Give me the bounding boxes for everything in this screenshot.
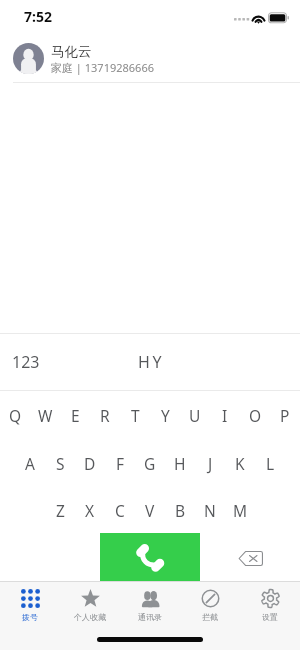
button[interactable]: C bbox=[105, 487, 135, 533]
button[interactable]: K bbox=[225, 439, 255, 487]
button[interactable]: U bbox=[180, 391, 210, 439]
button[interactable]: H bbox=[165, 439, 195, 487]
button[interactable]: 通讯录 bbox=[120, 581, 180, 626]
button[interactable]: S bbox=[45, 439, 75, 487]
button[interactable]: J bbox=[195, 439, 225, 487]
staticText: Z bbox=[56, 500, 65, 521]
button[interactable]: 设置 bbox=[240, 581, 300, 626]
staticText: E bbox=[71, 405, 80, 426]
button[interactable]: HY bbox=[123, 341, 178, 383]
staticText: 家庭 | 13719286666 bbox=[51, 60, 154, 75]
button[interactable]: M bbox=[225, 487, 255, 533]
button[interactable]: W bbox=[30, 391, 60, 439]
button[interactable]: Y bbox=[150, 391, 180, 439]
staticText: 7:52 bbox=[24, 7, 52, 26]
staticText: G bbox=[144, 453, 156, 474]
button[interactable]: D bbox=[75, 439, 105, 487]
staticText: V bbox=[145, 500, 155, 521]
staticText: U bbox=[189, 405, 201, 426]
button[interactable]: G bbox=[135, 439, 165, 487]
staticText: L bbox=[266, 453, 275, 474]
button[interactable]: Backspace bbox=[230, 543, 270, 573]
staticText: P bbox=[280, 405, 290, 426]
button[interactable]: Q bbox=[0, 391, 30, 439]
staticText: 拨号 bbox=[22, 612, 38, 622]
button[interactable]: R bbox=[90, 391, 120, 439]
staticText: N bbox=[204, 500, 216, 521]
button[interactable]: E bbox=[60, 391, 90, 439]
button[interactable]: 123 bbox=[0, 341, 54, 383]
button[interactable]: 拨号 bbox=[0, 581, 60, 626]
staticText: S bbox=[56, 453, 65, 474]
staticText: 123 bbox=[12, 351, 40, 373]
staticText: Y bbox=[161, 405, 170, 426]
staticText: K bbox=[235, 453, 245, 474]
button[interactable]: 马化云 bbox=[0, 34, 300, 83]
staticText: 通讯录 bbox=[138, 612, 162, 622]
button[interactable]: B bbox=[165, 487, 195, 533]
staticText: 设置 bbox=[262, 612, 278, 622]
staticText: A bbox=[25, 453, 35, 474]
button[interactable]: L bbox=[255, 439, 285, 487]
button[interactable]: N bbox=[195, 487, 225, 533]
staticText: F bbox=[116, 453, 125, 474]
staticText: M bbox=[233, 500, 248, 521]
staticText: J bbox=[208, 453, 213, 474]
button[interactable]: F bbox=[105, 439, 135, 487]
staticText: 马化云 bbox=[51, 43, 92, 60]
staticText: I bbox=[222, 405, 228, 426]
staticText: W bbox=[38, 405, 53, 426]
button[interactable]: V bbox=[135, 487, 165, 533]
button[interactable]: X bbox=[75, 487, 105, 533]
staticText: D bbox=[84, 453, 96, 474]
button[interactable]: I bbox=[210, 391, 240, 439]
button[interactable]: Call bbox=[100, 533, 200, 581]
staticText: 拦截 bbox=[202, 612, 218, 622]
button[interactable]: 个人收藏 bbox=[60, 581, 120, 626]
button[interactable]: Z bbox=[45, 487, 75, 533]
staticText: R bbox=[100, 405, 110, 426]
staticText: T bbox=[131, 405, 140, 426]
button[interactable]: A bbox=[15, 439, 45, 487]
staticText: HY bbox=[138, 351, 165, 373]
staticText: X bbox=[85, 500, 95, 521]
staticText: Q bbox=[9, 405, 22, 426]
staticText: C bbox=[115, 500, 125, 521]
button[interactable]: O bbox=[240, 391, 270, 439]
button[interactable]: P bbox=[270, 391, 300, 439]
staticText: O bbox=[249, 405, 262, 426]
staticText: H bbox=[174, 453, 186, 474]
button[interactable]: 拦截 bbox=[180, 581, 240, 626]
staticText: B bbox=[175, 500, 186, 521]
staticText: 个人收藏 bbox=[74, 612, 106, 622]
button[interactable]: T bbox=[120, 391, 150, 439]
